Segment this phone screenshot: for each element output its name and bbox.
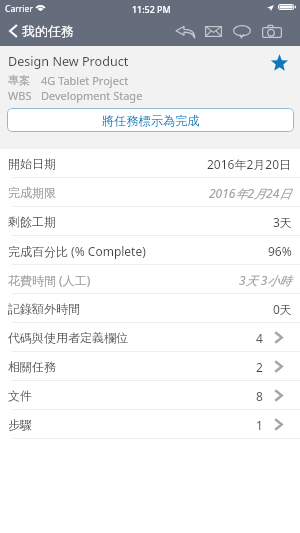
staticText: 4 xyxy=(256,330,263,346)
staticText: 2016年2月24日 xyxy=(209,185,292,201)
staticText: 開始日期 xyxy=(8,156,56,171)
staticText: 2 xyxy=(256,359,263,375)
staticText: Development Stage xyxy=(41,88,143,103)
button[interactable]: 完成百分比 (% Complete) xyxy=(0,236,300,265)
button[interactable]: Reply xyxy=(168,20,195,44)
button[interactable]: 花費時間 (人工) xyxy=(0,265,300,294)
staticText: WBS xyxy=(8,88,32,103)
button[interactable]: 記錄額外時間 xyxy=(0,294,300,323)
staticText: 我的任務 xyxy=(22,23,74,39)
button[interactable]: 剩餘工期 xyxy=(0,207,300,236)
button[interactable]: 開始日期 xyxy=(0,149,300,178)
staticText: 剩餘工期 xyxy=(8,214,56,229)
button[interactable]: 文件 xyxy=(0,381,300,410)
button[interactable]: 代碼與使用者定義欄位 xyxy=(0,323,300,352)
staticText: 完成百分比 (% Complete) xyxy=(8,243,146,259)
staticText: 專案 xyxy=(8,73,30,87)
staticText: 1 xyxy=(256,417,263,433)
staticText: 相關任務 xyxy=(8,359,56,374)
staticText: 8 xyxy=(256,388,263,404)
staticText: 完成期限 xyxy=(8,185,56,200)
staticText: Design New Product xyxy=(8,53,129,70)
staticText: 文件 xyxy=(8,388,32,403)
staticText: 記錄額外時間 xyxy=(8,301,80,316)
button[interactable]: Camera xyxy=(256,19,300,44)
button[interactable]: 我的任務 xyxy=(0,19,82,43)
button[interactable]: 完成期限 xyxy=(0,178,300,207)
button[interactable]: 相關任務 xyxy=(0,352,300,381)
staticText: 2016年2月20日 xyxy=(207,156,292,172)
staticText: 3天 3小時 xyxy=(239,272,292,288)
button[interactable]: Favourite xyxy=(271,54,288,72)
button[interactable]: 步驟 xyxy=(0,410,300,439)
staticText: 步驟 xyxy=(8,417,32,432)
staticText: 花費時間 (人工) xyxy=(8,272,91,288)
staticText: 4G Tablet Project xyxy=(41,73,129,88)
staticText: 11:52 PM xyxy=(132,3,171,15)
staticText: Carrier xyxy=(5,3,33,15)
staticText: 3天 xyxy=(273,214,292,230)
staticText: 0天 xyxy=(273,301,292,317)
staticText: 代碼與使用者定義欄位 xyxy=(8,330,128,345)
button[interactable]: 將任務標示為完成 xyxy=(7,108,294,132)
staticText: 96% xyxy=(268,243,292,259)
button[interactable]: Mail xyxy=(195,20,225,43)
staticText: 將任務標示為完成 xyxy=(102,113,200,128)
button[interactable]: Comments xyxy=(225,19,256,44)
